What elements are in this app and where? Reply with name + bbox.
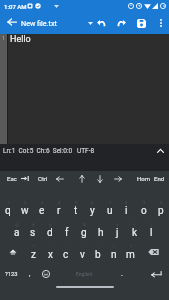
staticText: " <box>50 244 52 249</box>
staticText: 7 <box>109 200 112 205</box>
button[interactable]: Down <box>91 171 109 186</box>
staticText: ? <box>130 244 132 249</box>
button[interactable]: English <box>54 263 115 285</box>
staticText: z <box>31 249 36 261</box>
button[interactable]: 8 <box>118 197 135 219</box>
staticText: 3 <box>41 200 44 205</box>
staticText: , <box>29 270 31 278</box>
button[interactable]: @ <box>9 219 25 241</box>
button[interactable]: ?123 <box>0 263 23 285</box>
staticText: New file.txt <box>21 19 57 27</box>
button[interactable]: End <box>150 171 168 186</box>
button[interactable]: Delete <box>138 241 169 263</box>
button[interactable]: Collapse toolbar <box>151 144 169 157</box>
button[interactable]: * <box>25 241 42 263</box>
button[interactable]: : <box>74 241 90 263</box>
button[interactable]: Tab <box>16 171 34 186</box>
staticText: ?123 <box>5 271 18 278</box>
button[interactable]: 7 <box>101 197 118 219</box>
staticText: g <box>81 227 87 239</box>
button[interactable]: Shift <box>0 241 25 263</box>
button[interactable]: Ctrl <box>34 171 52 186</box>
staticText: s <box>30 227 36 239</box>
button[interactable]: ? <box>122 241 138 263</box>
staticText: h <box>98 227 104 239</box>
button[interactable]: More options <box>152 12 169 34</box>
button[interactable]: - <box>92 219 109 241</box>
button[interactable]: Navigate up <box>2 12 22 32</box>
button[interactable]: ' <box>58 241 74 263</box>
staticText: w <box>21 205 29 217</box>
button[interactable]: 3 <box>33 197 50 219</box>
button[interactable]: , <box>23 263 37 285</box>
button[interactable]: $ <box>41 219 58 241</box>
staticText: Ctrl <box>38 175 48 182</box>
staticText: a <box>14 227 20 239</box>
button[interactable]: 2 <box>16 197 33 219</box>
button[interactable]: Esc <box>3 171 21 186</box>
staticText: Esc <box>7 175 17 182</box>
staticText: + <box>116 222 119 227</box>
button[interactable]: " <box>42 241 58 263</box>
staticText: End <box>154 175 165 182</box>
button[interactable]: Redo <box>112 12 131 34</box>
button[interactable]: & <box>75 219 92 241</box>
staticText: y <box>90 205 95 217</box>
staticText: 1 <box>2 35 5 41</box>
staticText: r <box>57 205 61 217</box>
staticText: 6 <box>91 200 94 205</box>
button[interactable]: ( <box>126 219 143 241</box>
staticText: 4 <box>58 200 61 205</box>
staticText: ' <box>66 244 67 249</box>
button[interactable]: Right <box>109 171 127 186</box>
staticText: @ <box>15 222 19 227</box>
button[interactable]: 1 <box>0 197 16 219</box>
staticText: ( <box>134 222 136 227</box>
button[interactable]: # <box>25 219 41 241</box>
staticText: j <box>116 227 119 239</box>
staticText: * <box>33 244 35 249</box>
button[interactable]: Show more <box>83 12 98 34</box>
button[interactable]: _ <box>58 219 75 241</box>
staticText: n <box>111 249 117 261</box>
staticText: $ <box>49 222 52 227</box>
staticText: o <box>141 205 147 217</box>
button[interactable]: . <box>115 263 129 285</box>
button[interactable]: 4 <box>50 197 67 219</box>
staticText: & <box>83 222 86 227</box>
button[interactable]: ) <box>143 219 160 241</box>
button[interactable]: 5 <box>67 197 84 219</box>
staticText: 0 <box>160 200 163 205</box>
staticText: i <box>125 205 128 217</box>
button[interactable]: 9 <box>135 197 152 219</box>
button[interactable]: + <box>109 219 126 241</box>
staticText: l <box>150 227 153 239</box>
button[interactable]: Save <box>132 12 151 34</box>
staticText: v <box>80 249 85 261</box>
staticText: m <box>126 249 135 261</box>
staticText: t <box>74 205 78 217</box>
staticText: c <box>63 249 69 261</box>
button[interactable]: Left <box>51 171 69 186</box>
staticText: ! <box>113 244 115 249</box>
staticText: Hom <box>137 175 150 182</box>
button[interactable]: 0 <box>152 197 169 219</box>
button[interactable]: Hom <box>134 171 152 186</box>
button[interactable]: Up <box>73 171 91 186</box>
staticText: # <box>32 222 35 227</box>
button[interactable]: Enter <box>129 263 169 285</box>
staticText: 5 <box>75 200 78 205</box>
staticText: _ <box>66 222 68 227</box>
staticText: x <box>48 249 53 261</box>
button[interactable]: 6 <box>84 197 101 219</box>
staticText: 2 <box>24 200 27 205</box>
staticText: 1 <box>7 200 10 205</box>
button[interactable]: Emoji <box>37 263 54 285</box>
button[interactable]: ; <box>90 241 106 263</box>
button[interactable]: Undo <box>92 12 111 34</box>
button[interactable]: ! <box>106 241 122 263</box>
staticText: q <box>5 205 11 217</box>
